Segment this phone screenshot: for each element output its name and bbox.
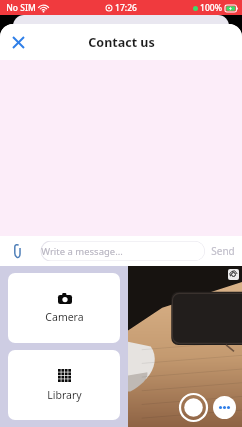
button[interactable]: Take photo (180, 394, 207, 421)
staticText: 100% (200, 2, 222, 14)
staticText: No SIM (6, 2, 36, 14)
staticText: 17:26 (115, 2, 137, 14)
button[interactable]: More options (213, 396, 236, 419)
button[interactable]: Camera (8, 273, 120, 343)
button[interactable]: Send (205, 244, 235, 258)
staticText: Write a message... (41, 245, 123, 258)
staticText: Library (47, 388, 82, 402)
staticText: Camera (45, 310, 84, 324)
staticText: Send (211, 244, 235, 258)
button[interactable]: Write a message... (32, 241, 205, 261)
button[interactable]: Close (0, 24, 36, 60)
button[interactable]: Flip camera (228, 269, 239, 280)
staticText: Contact us (88, 34, 155, 51)
button[interactable]: Camera preview (128, 266, 242, 427)
button[interactable]: Library (8, 350, 120, 420)
button[interactable]: Attach file (7, 241, 27, 261)
